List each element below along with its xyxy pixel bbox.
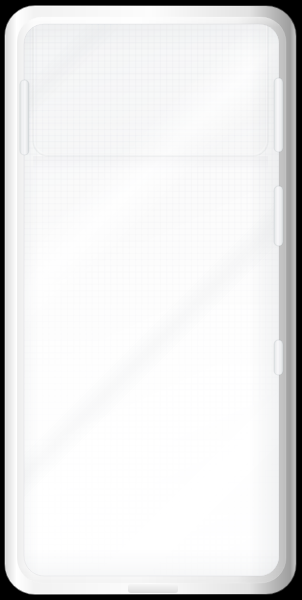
- button[interactable]: Clear phone case product render: [0, 0, 302, 600]
